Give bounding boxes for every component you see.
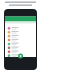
button[interactable]: App bar	[5, 17, 36, 22]
button[interactable]: Compose new message	[18, 53, 23, 58]
button[interactable]	[5, 34, 36, 38]
button[interactable]	[5, 30, 36, 34]
button[interactable]	[5, 42, 36, 46]
button[interactable]	[5, 54, 36, 58]
button[interactable]	[5, 50, 36, 54]
button[interactable]	[5, 38, 36, 42]
button[interactable]	[5, 46, 36, 50]
button[interactable]	[5, 26, 36, 30]
